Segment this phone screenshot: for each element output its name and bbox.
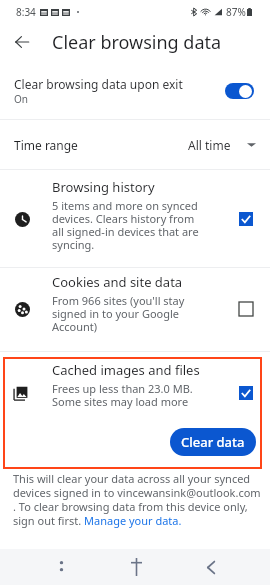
staticText: All time (188, 137, 231, 153)
staticText: This will clear your data across all you… (13, 471, 263, 528)
staticText: Clear browsing data (52, 30, 222, 55)
staticText: Cached images and files (52, 361, 200, 379)
staticText: Cookies and site data (52, 273, 183, 291)
staticText: Clear data (181, 433, 245, 451)
staticText: Time range (14, 137, 78, 153)
button[interactable]: Clear browsing data upon exit (0, 62, 270, 119)
staticText: 87% (226, 5, 246, 19)
staticText: Clear browsing data upon exit (14, 76, 183, 92)
button[interactable]: Back (4, 24, 40, 60)
staticText: 8:34 (16, 5, 36, 19)
staticText: 5 items and more on synced devices. Clea… (52, 198, 202, 253)
button[interactable]: Home (117, 549, 155, 585)
button[interactable] (0, 166, 270, 256)
button[interactable]: Time range (0, 120, 270, 169)
button[interactable] (0, 261, 270, 351)
staticText: On (14, 92, 28, 106)
button[interactable]: Clear data (170, 428, 256, 456)
staticText: Frees up less than 23.0 MB. Some sites m… (52, 381, 202, 410)
button[interactable]: Recent apps (42, 549, 80, 585)
button[interactable] (0, 349, 270, 439)
staticText: Browsing history (52, 178, 155, 196)
button[interactable]: Back (192, 549, 230, 585)
staticText: From 966 sites (you'll stay signed in to… (52, 293, 202, 335)
